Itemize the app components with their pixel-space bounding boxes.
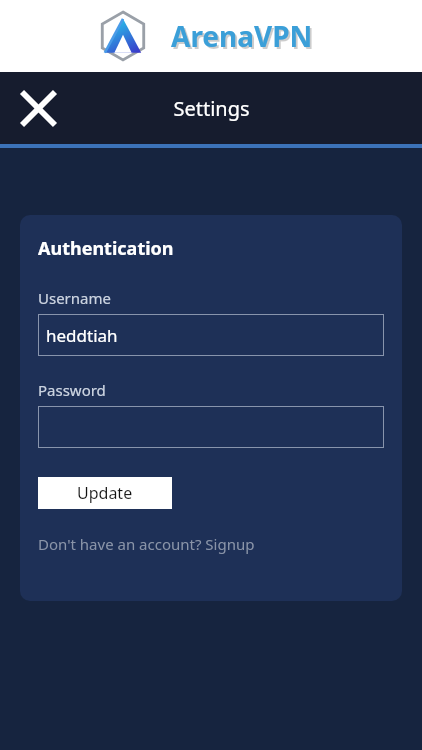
staticText: Settings [173,95,250,122]
staticText: Don't have an account? Signup [38,534,255,554]
button[interactable]: heddtiah [38,314,384,356]
staticText: heddtiah [46,324,118,347]
staticText: Password [38,380,106,400]
staticText: Update [77,482,133,504]
button[interactable]: Don't have an account? Signup [38,534,255,554]
staticText: Authentication [38,236,174,261]
button[interactable]: Close [12,82,64,134]
staticText: ArenaVPN [173,19,315,57]
button[interactable] [38,406,384,448]
button[interactable]: Update [38,477,172,509]
staticText: ArenaVPN [171,17,313,55]
staticText: Username [38,288,111,308]
